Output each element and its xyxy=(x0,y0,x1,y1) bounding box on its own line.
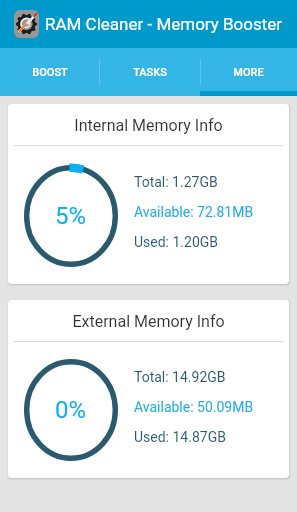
staticText: Used: 1.20GB xyxy=(134,234,219,250)
button[interactable]: TASKS xyxy=(99,48,200,96)
staticText: 0% xyxy=(55,396,87,424)
staticText: TASKS xyxy=(133,66,167,79)
staticText: Available: 50.09MB xyxy=(134,399,254,415)
button[interactable]: BOOST xyxy=(0,48,99,96)
staticText: BOOST xyxy=(32,66,68,79)
staticText: MORE xyxy=(233,66,264,79)
staticText: External Memory Info xyxy=(8,312,289,331)
staticText: 5% xyxy=(55,202,87,230)
other: RAM Cleaner icon xyxy=(14,10,39,38)
staticText: Used: 14.87GB xyxy=(134,429,226,445)
button[interactable]: External Memory Info xyxy=(8,300,289,478)
button[interactable]: MORE xyxy=(200,48,297,96)
staticText: Total: 14.92GB xyxy=(134,369,226,385)
staticText: Internal Memory Info xyxy=(8,116,289,135)
staticText: Available: 72.81MB xyxy=(134,204,254,220)
button[interactable]: Internal Memory Info xyxy=(8,104,289,284)
staticText: Total: 1.27GB xyxy=(134,174,218,190)
staticText: RAM Cleaner - Memory Booster xyxy=(45,14,283,34)
